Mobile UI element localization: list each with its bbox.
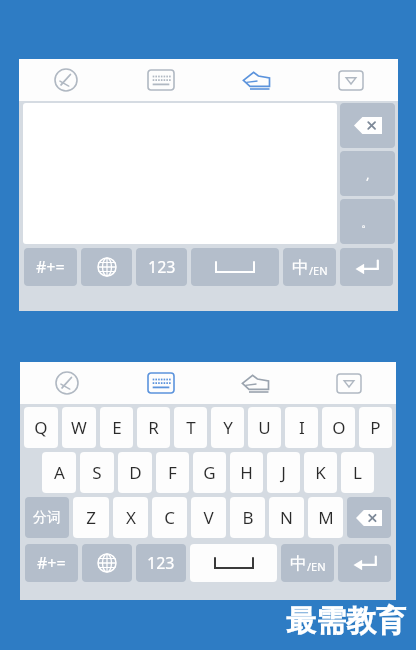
button[interactable]: Keyboard mode [114, 362, 208, 404]
staticText: X [126, 506, 136, 529]
button[interactable]: H [230, 452, 263, 493]
staticText: , [366, 165, 370, 183]
staticText: 123 [148, 256, 176, 278]
staticText: 中 [292, 257, 309, 278]
button[interactable]: R [137, 407, 170, 448]
staticText: K [315, 461, 326, 484]
button[interactable]: C [152, 497, 187, 538]
button[interactable]: Comma [340, 151, 395, 196]
staticText: P [370, 416, 381, 439]
button[interactable]: Backspace [340, 103, 395, 148]
button[interactable]: M [308, 497, 343, 538]
staticText: 。 [361, 214, 374, 230]
button[interactable]: I [285, 407, 318, 448]
button[interactable]: Q [24, 407, 58, 448]
button[interactable]: P [359, 407, 392, 448]
button[interactable]: Enter [338, 544, 391, 582]
staticText: Y [223, 416, 233, 439]
staticText: V [203, 506, 214, 529]
staticText: 最需教育 [286, 602, 406, 640]
button[interactable]: T [174, 407, 207, 448]
button[interactable]: Handwriting mode [19, 59, 113, 101]
button[interactable]: N [269, 497, 304, 538]
staticText: H [240, 461, 253, 484]
button[interactable]: Z [73, 497, 109, 538]
button[interactable]: B [230, 497, 265, 538]
staticText: W [71, 416, 87, 439]
staticText: C [164, 506, 175, 529]
staticText: F [168, 461, 177, 484]
button[interactable]: U [248, 407, 281, 448]
staticText: /EN [309, 263, 328, 278]
staticText: R [148, 416, 159, 439]
staticText: 中 [290, 553, 307, 574]
staticText: N [280, 506, 293, 529]
button[interactable]: Language [81, 248, 132, 286]
button[interactable]: #+= [25, 544, 78, 582]
button[interactable]: L [341, 452, 374, 493]
staticText: L [353, 461, 362, 484]
staticText: O [332, 416, 346, 439]
staticText: S [92, 461, 102, 484]
button[interactable]: W [62, 407, 96, 448]
button[interactable]: Period [340, 199, 395, 244]
button[interactable]: Chinese English toggle [281, 544, 334, 582]
button[interactable]: A [42, 452, 76, 493]
staticText: I [299, 416, 305, 439]
staticText: #+= [37, 552, 66, 574]
button[interactable]: J [267, 452, 300, 493]
button[interactable]: Hide keyboard [302, 362, 396, 404]
staticText: 分词 [33, 509, 61, 527]
button[interactable]: V [191, 497, 226, 538]
button[interactable]: Enter [340, 248, 393, 286]
staticText: T [186, 416, 196, 439]
button[interactable]: Space [190, 544, 277, 582]
button[interactable]: 123 [136, 248, 187, 286]
button[interactable]: Backspace [347, 497, 391, 538]
button[interactable]: S [80, 452, 114, 493]
button[interactable]: E [100, 407, 133, 448]
button[interactable]: 123 [136, 544, 186, 582]
button[interactable]: F [156, 452, 189, 493]
button[interactable]: X [113, 497, 148, 538]
button[interactable]: K [304, 452, 337, 493]
button[interactable]: 分词 [25, 497, 69, 538]
button[interactable]: Write gesture [208, 59, 303, 101]
staticText: 123 [147, 552, 175, 574]
staticText: B [242, 506, 254, 529]
staticText: /EN [307, 559, 326, 574]
staticText: A [54, 461, 65, 484]
button[interactable]: Y [211, 407, 244, 448]
button[interactable]: Chinese English toggle [283, 248, 336, 286]
staticText: Z [86, 506, 96, 529]
staticText: G [203, 461, 216, 484]
staticText: M [318, 506, 334, 529]
button[interactable]: Keyboard mode [113, 59, 208, 101]
button[interactable]: Hide keyboard [303, 59, 398, 101]
staticText: U [258, 416, 271, 439]
button[interactable]: Write gesture [208, 362, 302, 404]
button[interactable]: Language [82, 544, 132, 582]
button[interactable]: O [322, 407, 355, 448]
staticText: D [129, 461, 142, 484]
button[interactable]: D [118, 452, 152, 493]
button[interactable]: Handwriting mode [20, 362, 114, 404]
staticText: J [281, 461, 286, 484]
button[interactable]: Space [191, 248, 279, 286]
staticText: #+= [36, 256, 65, 278]
button[interactable]: #+= [24, 248, 77, 286]
staticText: E [112, 416, 122, 439]
staticText: Q [34, 416, 48, 439]
button[interactable]: G [193, 452, 226, 493]
